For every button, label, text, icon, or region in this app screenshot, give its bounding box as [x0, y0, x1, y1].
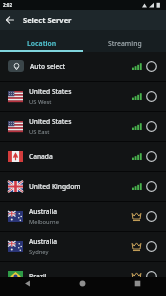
button[interactable]: Streaming — [83, 30, 166, 52]
button[interactable]: Brazil — [0, 262, 166, 290]
staticText: United States — [29, 87, 72, 96]
button[interactable]: Canada — [0, 142, 166, 170]
staticText: Australia — [29, 207, 57, 216]
button[interactable]: United States — [0, 112, 166, 140]
staticText: Brazil — [29, 272, 47, 281]
staticText: Auto select — [30, 62, 66, 71]
button[interactable] — [110, 274, 165, 293]
staticText: Canada — [29, 152, 53, 161]
button[interactable]: Australia — [0, 202, 166, 230]
staticText: Select Server — [23, 15, 72, 25]
button[interactable] — [0, 274, 55, 293]
staticText: Australia — [29, 237, 57, 246]
button[interactable]: Auto select — [0, 52, 166, 80]
staticText: 2:02 — [3, 2, 12, 8]
button[interactable]: Australia — [0, 232, 166, 260]
button[interactable]: United Kingdom — [0, 172, 166, 200]
button[interactable] — [0, 10, 20, 30]
staticText: US West — [29, 98, 52, 106]
staticText: Location — [27, 39, 57, 48]
button[interactable]: United States — [0, 82, 166, 110]
staticText: Sydney — [29, 248, 49, 256]
button[interactable] — [55, 274, 110, 293]
staticText: United States — [29, 117, 72, 126]
staticText: United Kingdom — [29, 182, 81, 191]
staticText: Melbourne — [29, 218, 59, 226]
staticText: US East — [29, 128, 50, 136]
staticText: Streaming — [108, 39, 142, 48]
button[interactable]: Location — [0, 30, 83, 52]
